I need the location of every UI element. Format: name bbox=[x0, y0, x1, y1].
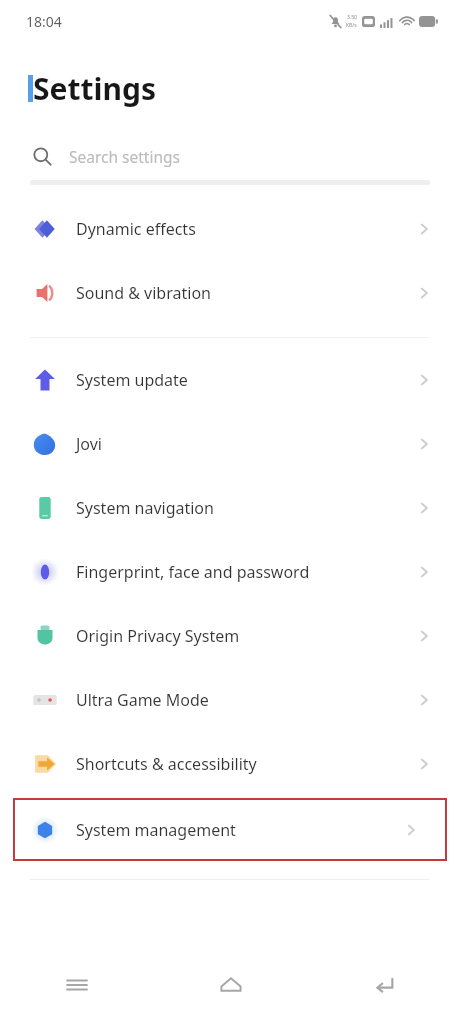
staticText: KB/s bbox=[346, 22, 357, 29]
button[interactable]: Search settings bbox=[0, 141, 460, 171]
staticText: System management bbox=[76, 819, 403, 841]
button[interactable]: Ultra Game Mode bbox=[0, 678, 460, 722]
staticText: 18:04 bbox=[26, 12, 62, 31]
staticText: Origin Privacy System bbox=[76, 625, 416, 647]
button[interactable]: Fingerprint, face and password bbox=[0, 550, 460, 594]
staticText: Settings bbox=[33, 68, 156, 109]
staticText: Shortcuts & accessibility bbox=[76, 753, 416, 775]
button[interactable]: System management bbox=[13, 798, 447, 861]
button[interactable]: Recent apps bbox=[0, 946, 154, 1024]
staticText: Search settings bbox=[69, 146, 180, 167]
button[interactable]: Home bbox=[154, 946, 307, 1024]
staticText: System update bbox=[76, 369, 416, 391]
button[interactable]: Jovi bbox=[0, 422, 460, 466]
button[interactable]: Sound & vibration bbox=[0, 271, 460, 315]
staticText: Ultra Game Mode bbox=[76, 689, 416, 711]
staticText: Dynamic effects bbox=[76, 218, 416, 240]
staticText: Jovi bbox=[76, 433, 416, 455]
button[interactable]: Origin Privacy System bbox=[0, 614, 460, 658]
staticText: 3.50 bbox=[347, 14, 357, 21]
staticText: Fingerprint, face and password bbox=[76, 561, 416, 583]
button[interactable]: Back bbox=[307, 946, 460, 1024]
staticText: Sound & vibration bbox=[76, 282, 416, 304]
button[interactable]: Dynamic effects bbox=[0, 207, 460, 251]
button[interactable]: Shortcuts & accessibility bbox=[0, 742, 460, 786]
button[interactable]: System navigation bbox=[0, 486, 460, 530]
button[interactable]: System update bbox=[0, 358, 460, 402]
staticText: System navigation bbox=[76, 497, 416, 519]
